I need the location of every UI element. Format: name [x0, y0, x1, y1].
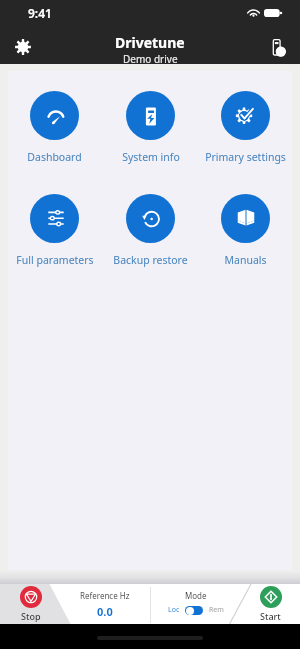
- staticText: Manuals: [224, 253, 267, 267]
- button[interactable]: Device connection: [263, 32, 293, 62]
- button[interactable]: Settings: [8, 32, 38, 62]
- staticText: Drivetune: [115, 33, 185, 52]
- button[interactable]: Backup restore: [103, 194, 198, 267]
- button[interactable]: Stop: [8, 586, 53, 622]
- staticText: Rem: [209, 605, 224, 615]
- button[interactable]: Mode: [164, 590, 227, 615]
- staticText: Demo drive: [123, 52, 178, 66]
- staticText: Backup restore: [113, 253, 188, 267]
- staticText: Loc: [168, 605, 180, 615]
- staticText: Mode: [185, 590, 207, 601]
- button[interactable]: Manuals: [198, 194, 293, 267]
- button[interactable]: System info: [103, 91, 198, 164]
- button[interactable]: Primary settings: [198, 91, 293, 164]
- button[interactable]: Full parameters: [7, 194, 102, 267]
- staticText: Start: [260, 610, 281, 622]
- staticText: Full parameters: [16, 253, 94, 267]
- staticText: Stop: [21, 610, 41, 622]
- staticText: 9:41: [28, 5, 52, 21]
- button[interactable]: Start: [248, 586, 293, 622]
- staticText: 0.0: [97, 604, 113, 619]
- button[interactable]: Reference Hz: [74, 590, 136, 619]
- staticText: Primary settings: [205, 150, 286, 164]
- staticText: Dashboard: [27, 150, 82, 164]
- staticText: Reference Hz: [80, 590, 130, 601]
- staticText: System info: [122, 150, 180, 164]
- button[interactable]: Dashboard: [7, 91, 102, 164]
